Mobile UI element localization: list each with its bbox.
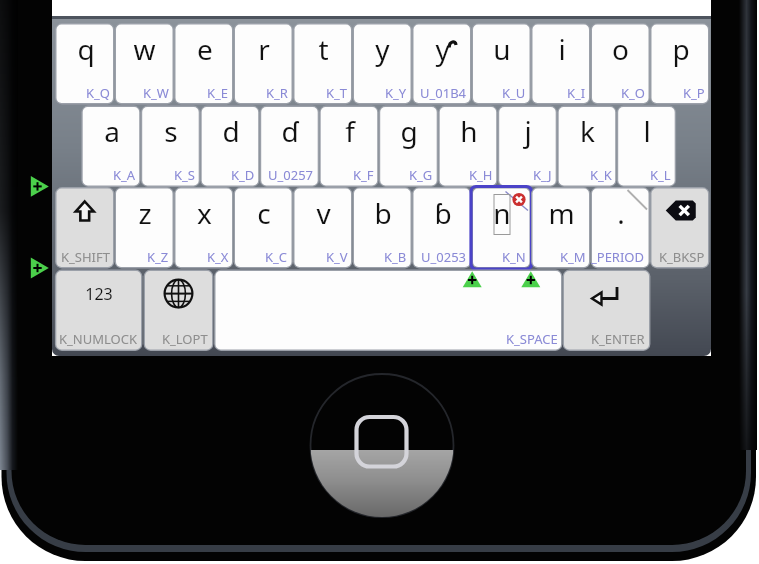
staticText: ɗ: [281, 112, 299, 150]
staticText: K_E: [207, 84, 229, 102]
button[interactable]: K_D: [202, 107, 259, 186]
staticText: m: [548, 194, 575, 232]
staticText: k: [580, 112, 595, 150]
staticText: K_B: [384, 248, 407, 266]
button[interactable]: K_P: [652, 25, 709, 104]
button[interactable]: K_C: [235, 189, 292, 268]
staticText: K_P: [683, 84, 705, 102]
staticText: g: [400, 112, 418, 150]
button[interactable]: K_H: [440, 107, 497, 186]
button[interactable]: K_SPACE: [216, 271, 562, 350]
staticText: u: [493, 30, 511, 68]
staticText: j: [524, 112, 532, 150]
button[interactable]: K_Y: [354, 25, 411, 104]
staticText: q: [77, 30, 95, 68]
button[interactable]: K_SHIFT: [57, 189, 114, 268]
button[interactable]: K_R: [235, 25, 292, 104]
staticText: K_J: [533, 166, 552, 184]
button[interactable]: U_01B4: [414, 25, 471, 104]
staticText: c: [257, 194, 271, 232]
staticText: f: [345, 112, 355, 150]
button[interactable]: _PERIOD: [592, 189, 649, 268]
staticText: K_D: [231, 166, 255, 184]
staticText: K_L: [650, 166, 671, 184]
staticText: K_A: [113, 166, 136, 184]
staticText: z: [138, 194, 152, 232]
button[interactable]: K_L: [618, 107, 675, 186]
staticText: ɓ: [434, 194, 452, 232]
staticText: U_0257: [268, 166, 314, 184]
button[interactable]: K_B: [354, 189, 411, 268]
staticText: r: [258, 30, 270, 68]
staticText: K_F: [353, 166, 374, 184]
staticText: K_I: [567, 84, 586, 102]
button[interactable]: K_N: [473, 189, 530, 268]
staticText: K_V: [326, 248, 348, 266]
staticText: .: [617, 194, 625, 232]
button[interactable]: K_Z: [116, 189, 173, 268]
staticText: h: [460, 112, 478, 150]
staticText: K_W: [143, 84, 169, 102]
staticText: K_LOPT: [162, 330, 208, 348]
staticText: K_R: [266, 84, 288, 102]
button[interactable]: K_K: [559, 107, 616, 186]
button[interactable]: U_0257: [261, 107, 318, 186]
button[interactable]: K_NUMLOCK: [56, 271, 141, 350]
staticText: K_Z: [147, 248, 169, 266]
button[interactable]: K_BKSP: [652, 189, 709, 268]
staticText: n: [493, 194, 511, 232]
button[interactable]: K_S: [142, 107, 199, 186]
staticText: U_01B4: [420, 84, 467, 102]
button[interactable]: K_X: [176, 189, 233, 268]
staticText: K_S: [174, 166, 195, 184]
staticText: d: [222, 112, 240, 150]
staticText: K_Y: [385, 84, 407, 102]
staticText: b: [374, 194, 392, 232]
staticText: K_X: [207, 248, 229, 266]
staticText: K_U: [502, 84, 526, 102]
button[interactable]: K_G: [380, 107, 437, 186]
staticText: e: [197, 30, 213, 68]
staticText: x: [197, 194, 212, 232]
button[interactable]: K_J: [499, 107, 556, 186]
button[interactable]: K_E: [176, 25, 233, 104]
button[interactable]: U_0253: [414, 189, 471, 268]
staticText: K_H: [469, 166, 493, 184]
staticText: y: [375, 30, 390, 68]
button[interactable]: K_O: [592, 25, 649, 104]
staticText: K_SHIFT: [61, 248, 110, 266]
staticText: K_N: [502, 248, 526, 266]
staticText: K_SPACE: [506, 330, 558, 348]
staticText: v: [316, 194, 331, 232]
button[interactable]: K_W: [116, 25, 173, 104]
staticText: 123: [85, 283, 113, 305]
staticText: i: [558, 30, 566, 68]
staticText: U_0253: [421, 248, 467, 266]
staticText: a: [104, 112, 120, 150]
button[interactable]: K_I: [533, 25, 590, 104]
button[interactable]: K_A: [83, 107, 140, 186]
button[interactable]: K_ENTER: [564, 271, 649, 350]
staticText: t: [318, 30, 329, 68]
button[interactable]: K_F: [321, 107, 378, 186]
button[interactable]: K_M: [533, 189, 590, 268]
button[interactable]: K_U: [473, 25, 530, 104]
staticText: s: [164, 112, 178, 150]
staticText: K_K: [590, 166, 612, 184]
staticText: _PERIOD: [591, 248, 645, 266]
staticText: K_T: [326, 84, 348, 102]
staticText: K_ENTER: [591, 330, 645, 348]
staticText: l: [643, 112, 651, 150]
button[interactable]: K_T: [295, 25, 352, 104]
staticText: p: [672, 30, 690, 68]
button[interactable]: K_LOPT: [145, 271, 212, 350]
staticText: K_C: [265, 248, 288, 266]
button[interactable]: K_V: [295, 189, 352, 268]
staticText: K_NUMLOCK: [59, 330, 137, 348]
button[interactable]: K_Q: [57, 25, 114, 104]
staticText: K_M: [560, 248, 586, 266]
staticText: w: [133, 30, 156, 68]
staticText: ƴ: [435, 30, 451, 68]
staticText: K_G: [409, 166, 433, 184]
staticText: K_Q: [86, 84, 110, 102]
